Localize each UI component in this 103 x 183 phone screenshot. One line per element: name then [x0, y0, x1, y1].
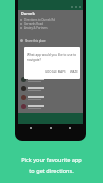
- button[interactable]: [18, 75, 83, 84]
- button[interactable]: GOOGLE MAPS: [45, 70, 66, 74]
- staticText: Share this place: [25, 39, 46, 43]
- button[interactable]: Anstey & Partners: [18, 26, 83, 30]
- button[interactable]: Share this place: [20, 38, 46, 43]
- button[interactable]: [18, 84, 83, 93]
- button[interactable]: WAZE: [70, 70, 78, 74]
- staticText: Durvek: [21, 11, 35, 16]
- button[interactable]: [18, 102, 83, 111]
- button[interactable]: [18, 93, 83, 102]
- staticText: to get directions.: [29, 167, 74, 175]
- button[interactable]: Directions to Durvek Rd: [18, 18, 83, 22]
- staticText: Directions to Durvek Rd: [24, 18, 56, 22]
- button[interactable]: Gerrards Road: [18, 22, 83, 26]
- staticText: navigate?: [27, 58, 41, 62]
- staticText: WAZE: [70, 70, 78, 74]
- staticText: Pick your favourite app: [21, 156, 82, 164]
- staticText: Anstey & Partners: [24, 26, 48, 30]
- staticText: GOOGLE MAPS: [45, 70, 66, 74]
- staticText: What app would you like to use to: [27, 53, 77, 57]
- staticText: Gerrards Road: [24, 22, 44, 26]
